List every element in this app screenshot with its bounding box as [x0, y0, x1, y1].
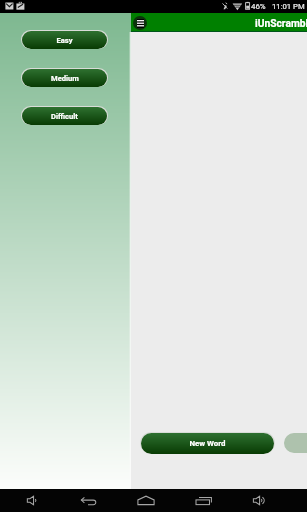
button[interactable]: Volume up [240, 489, 280, 512]
button[interactable]: Volume down [12, 489, 52, 512]
button[interactable]: Difficult [21, 106, 108, 125]
staticText: iUnScramble [255, 17, 307, 29]
button[interactable]: Easy [21, 30, 108, 49]
staticText: 46% [251, 2, 266, 11]
button[interactable]: Recent apps [183, 489, 223, 512]
staticText: Easy [56, 36, 73, 45]
button[interactable]: Open navigation menu [133, 16, 147, 30]
button[interactable]: Home [126, 489, 166, 512]
button[interactable]: Medium [21, 68, 108, 87]
button[interactable]: Next word [284, 433, 307, 453]
staticText: 11:01 PM [272, 2, 305, 11]
staticText: New Word [189, 439, 226, 448]
staticText: Medium [51, 74, 79, 83]
button[interactable]: New Word [140, 432, 275, 454]
staticText: Difficult [51, 112, 78, 121]
button[interactable]: Back [69, 489, 109, 512]
